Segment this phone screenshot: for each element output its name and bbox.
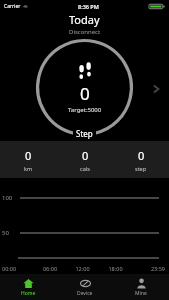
button[interactable]: Device	[57, 274, 113, 300]
staticText: km	[24, 165, 33, 172]
button[interactable]: Home	[0, 274, 57, 300]
button[interactable]: Mine	[113, 274, 169, 300]
button[interactable]: 0	[35, 38, 134, 137]
staticText: step	[135, 165, 147, 172]
staticText: 0	[138, 148, 145, 163]
staticText: 18:00	[99, 265, 132, 272]
button[interactable]: Next	[149, 82, 163, 96]
staticText: 12:00	[66, 265, 99, 272]
staticText: Today	[69, 12, 100, 27]
staticText: cals	[80, 165, 90, 172]
button[interactable]: 0	[0, 141, 57, 178]
staticText: Carrier	[4, 3, 21, 10]
staticText: 50	[2, 229, 9, 237]
staticText: 06:00	[34, 265, 66, 272]
staticText: Mine	[135, 290, 147, 297]
staticText: 0	[25, 148, 32, 163]
staticText: Device	[77, 290, 93, 297]
button[interactable]: 0	[57, 141, 113, 178]
staticText: 23:59	[132, 265, 165, 272]
staticText: 0	[80, 82, 90, 105]
staticText: 8:36 PM	[78, 3, 99, 10]
button[interactable]: 0	[113, 141, 169, 178]
staticText: 0	[82, 148, 89, 163]
staticText: 100	[2, 194, 13, 202]
staticText: Target:5000	[68, 106, 102, 114]
staticText: Disconnect	[69, 28, 101, 36]
staticText: Step	[76, 128, 93, 139]
staticText: 00:00	[2, 265, 34, 272]
staticText: Home	[21, 290, 36, 297]
